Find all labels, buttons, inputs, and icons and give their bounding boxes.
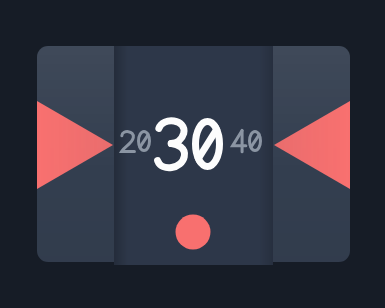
button[interactable]: Timer dial, 30 seconds — [0, 0, 385, 308]
